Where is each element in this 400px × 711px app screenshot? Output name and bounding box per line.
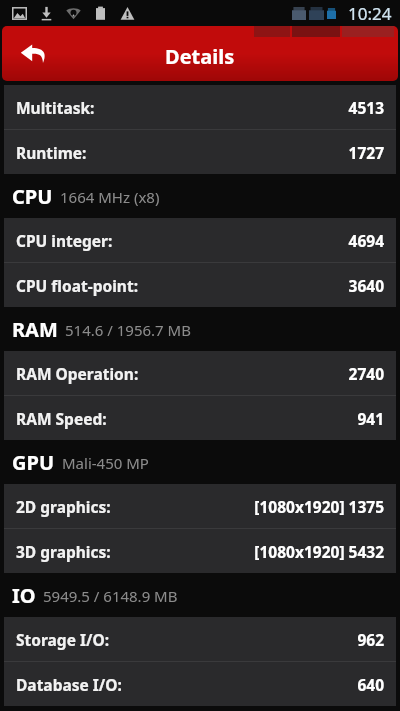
staticText: 962 (357, 629, 384, 650)
staticText: 640 (357, 674, 384, 695)
staticText: RAM Operation: (16, 363, 139, 384)
staticText: GPU (12, 449, 55, 476)
staticText: RAM Speed: (16, 408, 107, 429)
button[interactable]: Back (12, 32, 56, 76)
staticText: 1664 MHz (x8) (60, 187, 160, 207)
staticText: Details (165, 43, 235, 70)
staticText: 5949.5 / 6148.9 MB (43, 586, 178, 606)
button[interactable]: Multitask: (4, 85, 396, 129)
staticText: 941 (357, 408, 384, 429)
button[interactable]: RAM Operation: (4, 351, 396, 395)
staticText: 3D graphics: (16, 541, 111, 562)
staticText: [1080x1920] 1375 (254, 496, 384, 517)
button[interactable]: Runtime: (4, 130, 396, 174)
staticText: 1727 (348, 142, 384, 163)
staticText: 3640 (348, 275, 384, 296)
button[interactable]: 2D graphics: (4, 484, 396, 528)
staticText: 4513 (348, 97, 384, 118)
staticText: Mali-450 MP (62, 453, 149, 473)
staticText: 514.6 / 1956.7 MB (65, 320, 191, 340)
staticText: 2D graphics: (16, 496, 111, 517)
button[interactable]: CPU integer: (4, 218, 396, 262)
staticText: 2740 (348, 363, 384, 384)
staticText: IO (12, 582, 36, 609)
staticText: Database I/O: (16, 674, 122, 695)
button[interactable]: Storage I/O: (4, 617, 396, 661)
button[interactable]: Database I/O: (4, 662, 396, 706)
staticText: CPU (12, 183, 53, 210)
button[interactable]: RAM Speed: (4, 396, 396, 440)
staticText: Multitask: (16, 97, 95, 118)
staticText: RAM (12, 316, 58, 343)
staticText: CPU integer: (16, 230, 113, 251)
staticText: CPU float-point: (16, 275, 138, 296)
staticText: Runtime: (16, 142, 87, 163)
staticText: Storage I/O: (16, 629, 110, 650)
button[interactable]: 3D graphics: (4, 529, 396, 573)
staticText: 4694 (348, 230, 384, 251)
staticText: 10:24 (348, 2, 392, 25)
staticText: [1080x1920] 5432 (254, 541, 384, 562)
button[interactable]: CPU float-point: (4, 263, 396, 307)
